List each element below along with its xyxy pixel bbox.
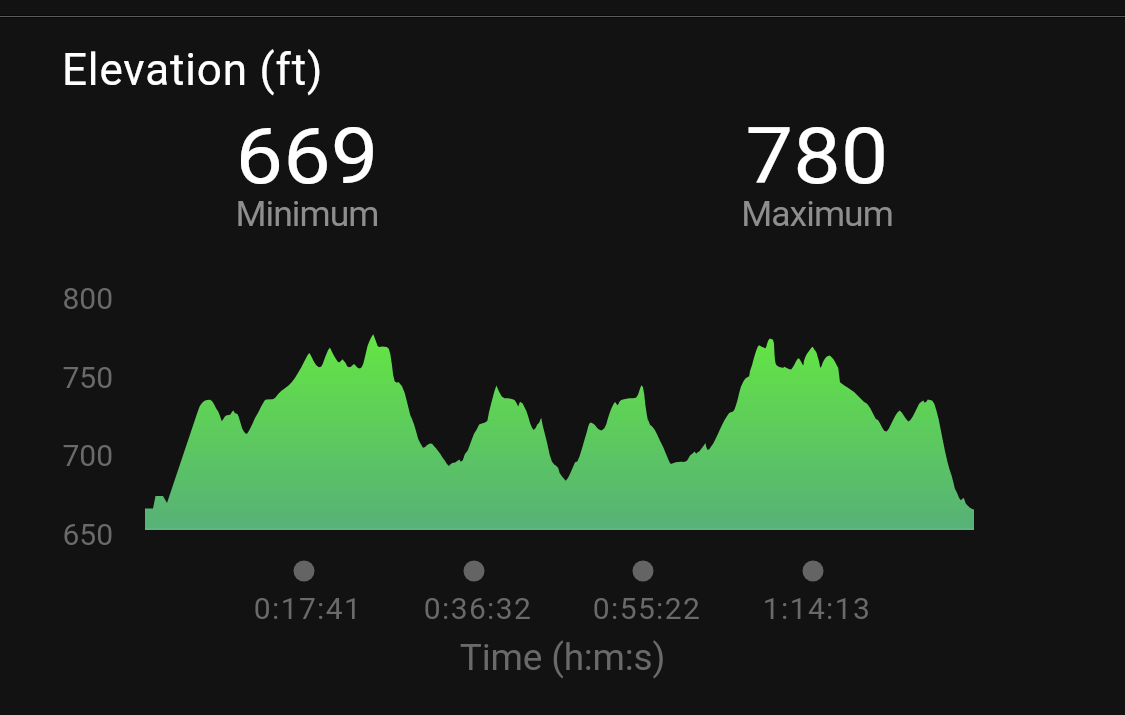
staticText: 0:17:41 <box>218 591 398 626</box>
staticText: Maximum <box>597 193 1037 235</box>
staticText: 750 <box>40 360 113 395</box>
staticText: Time (h:m:s) <box>0 636 1125 679</box>
staticText: 0:55:22 <box>557 591 737 626</box>
button[interactable]: Elevation (ft) <box>40 28 360 88</box>
staticText: Elevation (ft) <box>62 44 324 96</box>
staticText: 1:14:13 <box>727 591 907 626</box>
staticText: Minimum <box>87 193 527 235</box>
button[interactable]: 780 <box>597 108 1037 238</box>
staticText: 0:36:32 <box>388 591 568 626</box>
staticText: 700 <box>40 438 113 473</box>
button[interactable]: Elevation profile chart <box>130 290 990 540</box>
button[interactable]: 669 <box>87 108 527 238</box>
staticText: 650 <box>40 517 113 552</box>
staticText: 800 <box>40 281 113 316</box>
staticText: 780 <box>575 112 1059 202</box>
staticText: 669 <box>65 112 549 202</box>
